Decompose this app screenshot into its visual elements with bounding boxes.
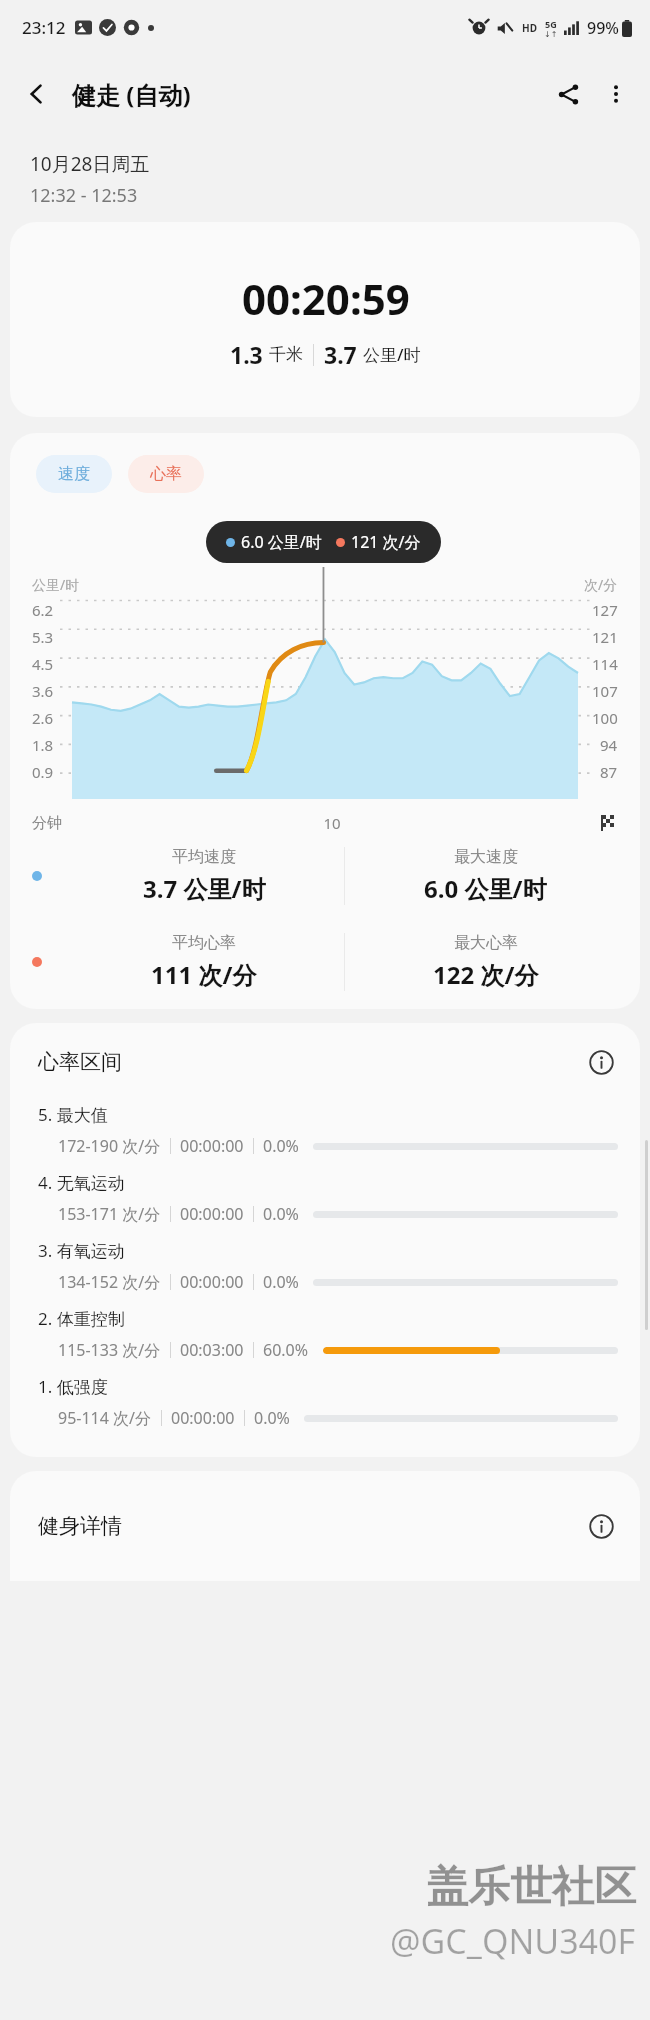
staticText: 94 — [600, 735, 618, 755]
staticText: 100 — [592, 708, 618, 728]
staticText: 10月28日周五 — [30, 151, 150, 177]
staticText: 153-171 次/分 — [58, 1203, 161, 1225]
staticText: @GC_QNU340F — [390, 1918, 636, 1964]
button[interactable]: 1. 低强度 — [10, 1367, 640, 1435]
staticText: 3. 有氧运动 — [38, 1239, 125, 1262]
staticText: 0.0% — [263, 1135, 299, 1157]
staticText: 1. 低强度 — [38, 1375, 108, 1398]
staticText: 12:32 - 12:53 — [30, 183, 138, 208]
staticText: 115-133 次/分 — [58, 1339, 161, 1361]
staticText: 00:00:00 — [180, 1271, 244, 1293]
staticText: 127 — [592, 600, 618, 620]
staticText: 健身详情 — [38, 1513, 122, 1539]
staticText: 121 — [592, 627, 618, 647]
staticText: 公里/时 — [32, 575, 80, 594]
staticText: 3.6 — [32, 681, 54, 701]
button[interactable]: 速度 — [36, 455, 112, 493]
staticText: 平均速度 — [172, 847, 236, 867]
staticText: 121 次/分 — [351, 531, 421, 553]
staticText: 次/分 — [584, 575, 618, 594]
staticText: 0.0% — [263, 1271, 299, 1293]
staticText: 1.3 — [230, 339, 269, 370]
staticText: 公里/时 — [363, 343, 421, 366]
staticText: 6.0 公里/时 — [241, 531, 322, 553]
staticText: 95-114 次/分 — [58, 1407, 152, 1429]
staticText: 2.6 — [32, 708, 54, 728]
staticText: 00:00:00 — [171, 1407, 235, 1429]
button[interactable]: 2. 体重控制 — [10, 1299, 640, 1367]
staticText: 速度 — [58, 464, 90, 484]
staticText: 10 — [62, 813, 602, 833]
staticText: 0.9 — [32, 762, 54, 782]
button[interactable]: 心率 — [128, 455, 204, 493]
staticText: 4.5 — [32, 654, 54, 674]
staticText: 134-152 次/分 — [58, 1271, 161, 1293]
staticText: 盖乐世社区 — [426, 1861, 636, 1914]
staticText: 87 — [600, 762, 618, 782]
staticText: 5.3 — [32, 627, 54, 647]
staticText: 00:00:00 — [180, 1135, 244, 1157]
button[interactable]: 3. 有氧运动 — [10, 1231, 640, 1299]
staticText: 99% — [587, 17, 619, 39]
staticText: 60.0% — [263, 1339, 309, 1361]
staticText: 00:20:59 — [242, 270, 410, 327]
staticText: HD — [522, 21, 537, 35]
button[interactable]: More options — [592, 70, 640, 118]
staticText: 1.8 — [32, 735, 54, 755]
button[interactable]: 健身详情 — [10, 1471, 640, 1581]
button[interactable]: Back — [14, 71, 60, 117]
other: Fitness detail info — [584, 1509, 618, 1543]
staticText: 健走 (自动) — [72, 78, 191, 111]
staticText: 心率 — [150, 464, 182, 484]
staticText: 0.0% — [254, 1407, 290, 1429]
staticText: 分钟 — [32, 814, 62, 833]
staticText: 107 — [592, 681, 618, 701]
staticText: 23:12 — [22, 16, 66, 39]
staticText: 6.2 — [32, 600, 54, 620]
button[interactable]: 4. 无氧运动 — [10, 1163, 640, 1231]
staticText: 心率区间 — [38, 1049, 122, 1075]
staticText: 3.7 — [324, 339, 363, 370]
staticText: 5. 最大值 — [38, 1103, 108, 1126]
staticText: 00:03:00 — [180, 1339, 244, 1361]
button[interactable]: 5. 最大值 — [10, 1095, 640, 1163]
staticText: 平均心率 — [172, 933, 236, 953]
staticText: 114 — [592, 654, 618, 674]
button[interactable]: Share — [544, 70, 592, 118]
button[interactable]: 00:20:59 — [10, 222, 640, 417]
staticText: 最大心率 — [454, 933, 518, 953]
staticText: 111 次/分 — [151, 958, 257, 991]
staticText: 千米 — [269, 344, 303, 365]
staticText: 00:00:00 — [180, 1203, 244, 1225]
staticText: 4. 无氧运动 — [38, 1171, 125, 1194]
staticText: 172-190 次/分 — [58, 1135, 161, 1157]
staticText: 5G — [545, 18, 557, 30]
staticText: 6.0 公里/时 — [424, 872, 547, 905]
staticText: ↓↑ — [544, 30, 558, 39]
button[interactable]: Heart rate zone info — [584, 1045, 618, 1079]
staticText: 最大速度 — [454, 847, 518, 867]
staticText: 3.7 公里/时 — [143, 872, 266, 905]
staticText: 122 次/分 — [433, 958, 539, 991]
staticText: 2. 体重控制 — [38, 1307, 125, 1330]
staticText: 0.0% — [263, 1203, 299, 1225]
